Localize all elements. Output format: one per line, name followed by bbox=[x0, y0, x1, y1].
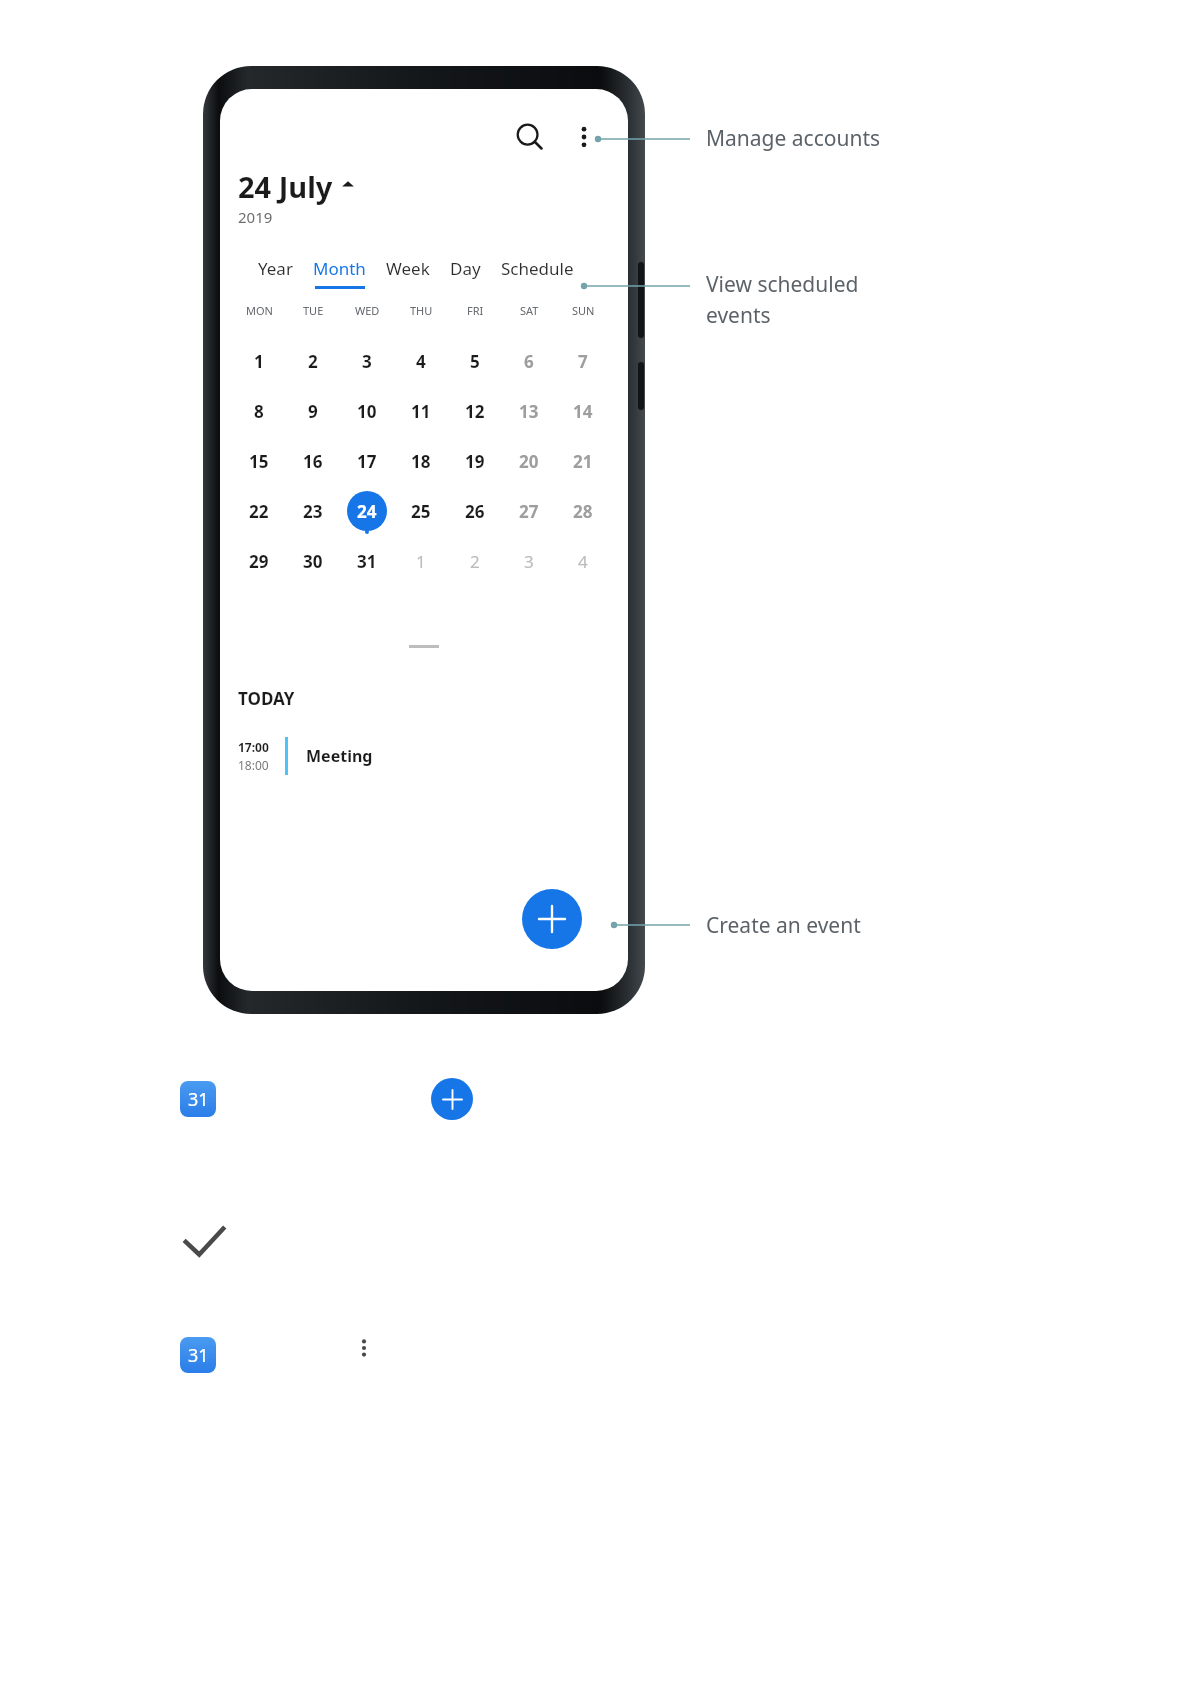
staticText: Create an event bbox=[706, 911, 861, 940]
button[interactable]: 13 bbox=[502, 386, 556, 436]
button[interactable]: Create an event bbox=[522, 889, 582, 949]
button[interactable]: 19 bbox=[448, 436, 502, 486]
staticText: 20 bbox=[519, 450, 539, 473]
staticText: 27 bbox=[519, 500, 539, 523]
button[interactable]: 4 bbox=[394, 336, 448, 386]
staticText: 2 bbox=[308, 350, 318, 373]
staticText: 2 bbox=[470, 550, 480, 573]
button[interactable]: 21 bbox=[556, 436, 610, 486]
button[interactable]: 15 bbox=[232, 436, 286, 486]
button[interactable]: 12 bbox=[448, 386, 502, 436]
staticText: 29 bbox=[249, 550, 269, 573]
button[interactable]: 10 bbox=[340, 386, 394, 436]
button[interactable]: 28 bbox=[556, 486, 610, 536]
staticText: 11 bbox=[411, 400, 431, 423]
button[interactable]: 11 bbox=[394, 386, 448, 436]
staticText: 28 bbox=[573, 500, 593, 523]
staticText: 3 bbox=[524, 550, 534, 573]
button[interactable]: 2 bbox=[286, 336, 340, 386]
staticText: 19 bbox=[465, 450, 485, 473]
button[interactable]: 18 bbox=[394, 436, 448, 486]
button[interactable]: 22 bbox=[232, 486, 286, 536]
staticText: 3 bbox=[362, 350, 372, 373]
staticText: View scheduled events bbox=[706, 270, 859, 329]
button[interactable]: Calendar app icon bbox=[180, 1337, 216, 1373]
button[interactable]: Done bbox=[180, 1218, 228, 1266]
button[interactable]: 5 bbox=[448, 336, 502, 386]
button[interactable]: Manage accounts bbox=[558, 111, 610, 163]
button[interactable]: Calendar app icon bbox=[180, 1081, 216, 1117]
button[interactable]: More options bbox=[348, 1332, 380, 1364]
staticText: 24 July bbox=[238, 167, 333, 206]
staticText: 15 bbox=[249, 450, 269, 473]
button[interactable]: 14 bbox=[556, 386, 610, 436]
staticText: 24 bbox=[357, 500, 377, 523]
button[interactable]: Add bbox=[431, 1078, 473, 1120]
staticText: SAT bbox=[520, 303, 539, 318]
staticText: 8 bbox=[254, 400, 264, 423]
button[interactable]: Week bbox=[376, 257, 440, 286]
button[interactable]: 6 bbox=[502, 336, 556, 386]
staticText: 18:00 bbox=[238, 757, 269, 773]
staticText: 16 bbox=[303, 450, 323, 473]
staticText: 1 bbox=[254, 350, 264, 373]
staticText: 4 bbox=[578, 550, 588, 573]
button[interactable]: Month bbox=[303, 257, 376, 289]
button[interactable]: 25 bbox=[394, 486, 448, 536]
button[interactable]: 8 bbox=[232, 386, 286, 436]
button[interactable]: 17 bbox=[340, 436, 394, 486]
button[interactable]: 30 bbox=[286, 536, 340, 586]
button[interactable]: 17:00 bbox=[238, 737, 628, 775]
staticText: MON bbox=[246, 303, 273, 318]
staticText: 9 bbox=[308, 400, 318, 423]
button[interactable]: Schedule bbox=[491, 257, 584, 286]
staticText: 2019 bbox=[238, 207, 273, 227]
staticText: Week bbox=[386, 257, 430, 280]
staticText: 31 bbox=[188, 1087, 209, 1112]
button[interactable]: 16 bbox=[286, 436, 340, 486]
staticText: 21 bbox=[573, 450, 593, 473]
button[interactable]: 1 bbox=[232, 336, 286, 386]
staticText: TODAY bbox=[238, 687, 295, 710]
staticText: 10 bbox=[357, 400, 377, 423]
staticText: WED bbox=[355, 303, 380, 318]
button[interactable]: 20 bbox=[502, 436, 556, 486]
button[interactable]: 3 bbox=[340, 336, 394, 386]
button[interactable]: 31 bbox=[340, 536, 394, 586]
staticText: 17 bbox=[357, 450, 377, 473]
staticText: 22 bbox=[249, 500, 269, 523]
staticText: 18 bbox=[411, 450, 431, 473]
staticText: Day bbox=[450, 257, 481, 280]
button[interactable]: 29 bbox=[232, 536, 286, 586]
button[interactable]: 24 July bbox=[238, 167, 355, 206]
staticText: 1 bbox=[416, 550, 426, 573]
button[interactable]: 26 bbox=[448, 486, 502, 536]
button[interactable]: 3 bbox=[502, 536, 556, 586]
button[interactable]: Search bbox=[504, 111, 556, 163]
staticText: 17:00 bbox=[238, 739, 269, 755]
staticText: 26 bbox=[465, 500, 485, 523]
staticText: 6 bbox=[524, 350, 534, 373]
staticText: FRI bbox=[467, 303, 484, 318]
button[interactable]: 2 bbox=[448, 536, 502, 586]
staticText: 23 bbox=[303, 500, 323, 523]
staticText: 4 bbox=[416, 350, 426, 373]
button[interactable]: Day bbox=[440, 257, 491, 286]
staticText: Month bbox=[313, 257, 366, 280]
button[interactable]: 9 bbox=[286, 386, 340, 436]
staticText: 30 bbox=[303, 550, 323, 573]
button[interactable]: 23 bbox=[286, 486, 340, 536]
button[interactable]: 24 bbox=[340, 486, 394, 536]
staticText: Manage accounts bbox=[706, 124, 881, 153]
button[interactable]: 27 bbox=[502, 486, 556, 536]
staticText: Schedule bbox=[501, 257, 574, 280]
staticText: 12 bbox=[465, 400, 485, 423]
staticText: TUE bbox=[303, 303, 324, 318]
staticText: 7 bbox=[578, 350, 588, 373]
button[interactable]: Year bbox=[248, 257, 303, 286]
button[interactable]: 7 bbox=[556, 336, 610, 386]
button[interactable]: 1 bbox=[394, 536, 448, 586]
staticText: 13 bbox=[519, 400, 539, 423]
button[interactable]: 4 bbox=[556, 536, 610, 586]
staticText: 31 bbox=[188, 1343, 209, 1368]
